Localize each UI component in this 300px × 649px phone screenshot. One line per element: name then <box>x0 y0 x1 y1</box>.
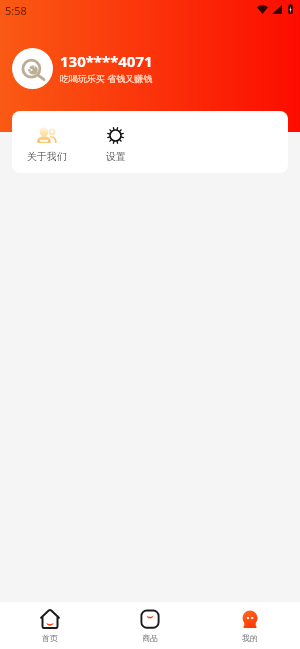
staticText: 关于我们 <box>27 150 67 163</box>
staticText: 5:58 <box>5 3 27 18</box>
staticText: 设置 <box>106 150 126 163</box>
staticText: 我的 <box>242 633 258 643</box>
button[interactable]: 设置 <box>81 111 150 173</box>
staticText: 吃喝玩乐买 省钱又赚钱 <box>60 72 153 84</box>
button[interactable]: 商品 <box>100 602 200 649</box>
button[interactable]: 首页 <box>0 602 100 649</box>
staticText: 首页 <box>42 633 58 643</box>
button[interactable]: 关于我们 <box>12 111 81 173</box>
staticText: 130****4071 <box>60 51 153 71</box>
button[interactable]: 我的 <box>200 602 300 649</box>
staticText: 商品 <box>142 633 158 643</box>
